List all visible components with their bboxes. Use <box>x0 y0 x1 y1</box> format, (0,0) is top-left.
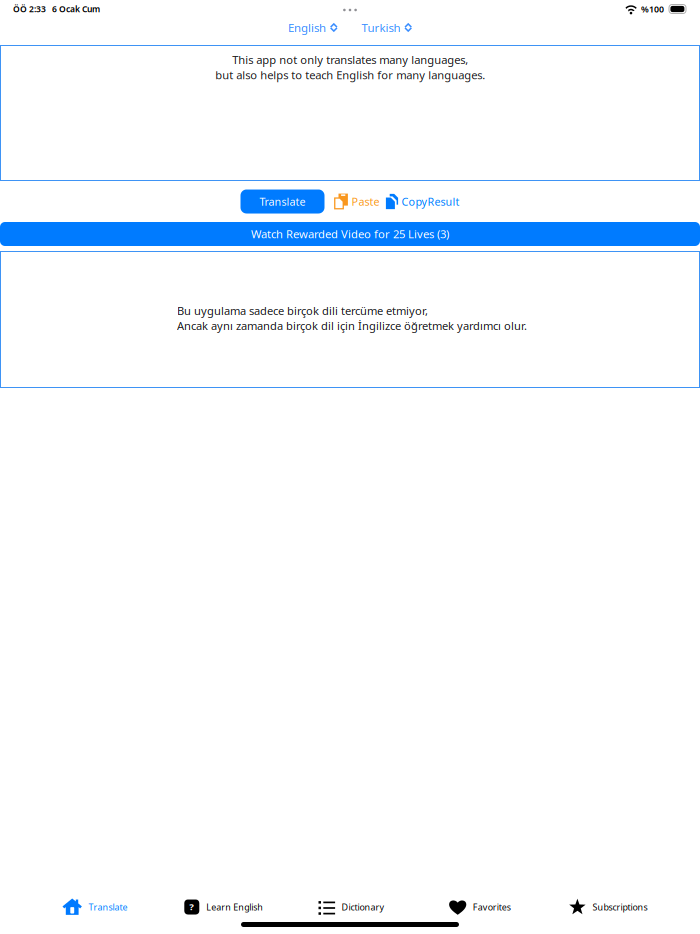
staticText: Dictionary <box>341 901 384 913</box>
staticText: This app not only translates many langua… <box>215 52 485 82</box>
staticText: Paste <box>351 194 379 209</box>
button[interactable]: Translate <box>31 891 159 923</box>
staticText: Subscriptions <box>592 901 647 913</box>
button[interactable]: Paste <box>333 188 379 214</box>
staticText: ÖÖ 2:33 6 Ocak Cum <box>13 3 100 15</box>
staticText: Turkish <box>361 20 400 35</box>
button[interactable]: Favorites <box>416 891 544 923</box>
button[interactable]: Turkish <box>361 16 412 38</box>
staticText: Favorites <box>473 901 511 913</box>
button[interactable]: CopyResult <box>385 188 459 214</box>
button[interactable]: Subscriptions <box>544 891 672 923</box>
staticText: %100 <box>641 3 664 15</box>
staticText: English <box>288 20 326 35</box>
staticText: CopyResult <box>401 194 459 209</box>
staticText: Bu uygulama sadece birçok dili tercüme e… <box>177 303 527 333</box>
button[interactable]: ? <box>159 891 287 923</box>
staticText: ? <box>189 900 194 913</box>
button[interactable]: Translate <box>240 189 324 213</box>
button[interactable]: Dictionary <box>287 891 416 923</box>
button[interactable]: English <box>288 16 337 38</box>
button[interactable]: Watch Rewarded Video for 25 Lives (3) <box>0 222 700 246</box>
staticText: Translate <box>89 901 128 913</box>
staticText: Watch Rewarded Video for 25 Lives (3) <box>251 226 449 242</box>
staticText: Translate <box>259 194 305 209</box>
staticText: Learn English <box>206 901 263 913</box>
